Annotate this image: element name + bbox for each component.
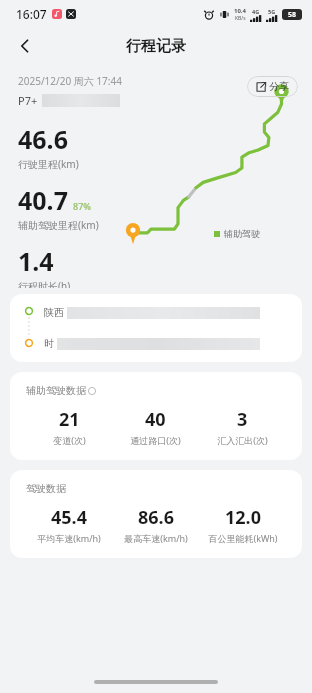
- staticText: P7+: [18, 93, 38, 108]
- staticText: 45.4: [51, 505, 87, 530]
- staticText: 时: [44, 337, 54, 350]
- staticText: 46.6: [18, 122, 68, 156]
- staticText: 辅助驾驶里程(km): [18, 218, 99, 232]
- staticText: 驾驶数据: [26, 482, 66, 495]
- button[interactable]: 陕西: [10, 294, 302, 362]
- staticText: 通过路口(次): [130, 434, 181, 446]
- staticText: 2025/12/20 周六 17:44: [18, 74, 122, 88]
- staticText: 百公里能耗(kWh): [208, 532, 278, 544]
- button[interactable]: 驾驶数据: [10, 470, 302, 558]
- staticText: 10.4: [234, 7, 246, 15]
- staticText: 21: [59, 407, 80, 432]
- staticText: 40.7: [18, 183, 68, 217]
- staticText: 平均车速(km/h): [37, 532, 101, 544]
- staticText: 辅助驾驶: [224, 228, 260, 239]
- button[interactable]: 分享: [247, 76, 298, 97]
- staticText: 58: [288, 10, 297, 20]
- staticText: 5G: [268, 8, 276, 15]
- staticText: 汇入汇出(次): [217, 434, 268, 446]
- staticText: 行程时长(h): [18, 279, 71, 288]
- staticText: 12.0: [225, 505, 261, 530]
- staticText: 1.4: [18, 244, 54, 278]
- staticText: 3: [237, 407, 248, 432]
- staticText: 87%: [73, 200, 91, 212]
- staticText: 行程记录: [126, 37, 186, 56]
- staticText: 4G: [252, 8, 260, 15]
- button[interactable]: Back: [8, 29, 42, 63]
- staticText: 行驶里程(km): [18, 157, 79, 171]
- staticText: 86.6: [138, 505, 174, 530]
- staticText: 辅助驾驶数据: [26, 384, 86, 397]
- staticText: 变道(次): [53, 434, 86, 446]
- staticText: 分享: [269, 80, 289, 93]
- staticText: 40: [145, 407, 166, 432]
- staticText: 16:07: [16, 6, 47, 22]
- staticText: 最高车速(km/h): [124, 532, 188, 544]
- staticText: 陕西: [44, 306, 64, 319]
- staticText: KB/s: [235, 15, 246, 22]
- button[interactable]: 辅助驾驶数据: [10, 372, 302, 460]
